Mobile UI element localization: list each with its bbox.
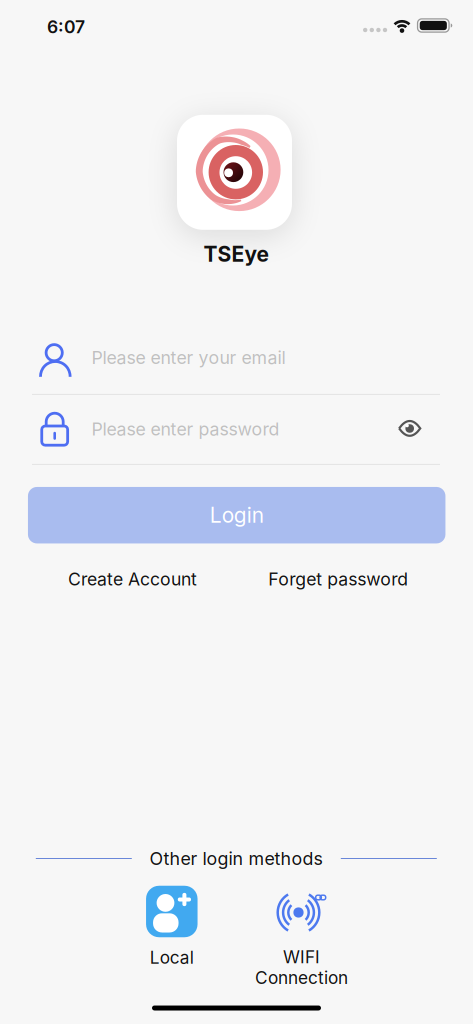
button[interactable]: WIFI Connection [267,886,329,938]
staticText: Forget password [268,568,408,590]
staticText: 6:07 [47,16,85,38]
button[interactable]: Local [146,886,198,937]
staticText: Other login methods [149,848,322,869]
staticText: TSEye [203,241,268,267]
button[interactable]: Forget password [268,568,408,590]
staticText: Local [150,947,194,968]
staticText: Please enter password [92,418,280,440]
button[interactable]: Login [28,487,445,543]
button[interactable]: Create Account [68,568,197,590]
button[interactable]: Show password [392,413,428,443]
staticText: Login [210,502,264,528]
staticText: WIFI [283,947,320,967]
button[interactable]: Please enter your email [32,324,441,394]
staticText: Connection [255,967,348,988]
staticText: Please enter your email [92,347,286,368]
button[interactable]: Please enter password [32,394,441,464]
staticText: Create Account [68,568,197,590]
